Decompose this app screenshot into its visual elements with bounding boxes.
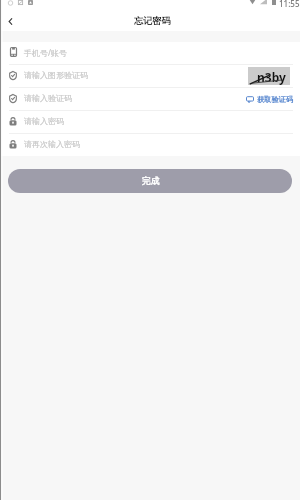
staticText: 手机号/账号 bbox=[24, 47, 289, 58]
staticText: 请输入密码 bbox=[24, 116, 289, 126]
staticText: 完成 bbox=[142, 176, 160, 187]
button[interactable]: 请输入验证码 bbox=[0, 88, 300, 110]
button[interactable]: Back bbox=[0, 11, 20, 31]
staticText: 请输入图形验证码 bbox=[24, 70, 247, 80]
button[interactable]: 手机号/账号 bbox=[0, 42, 300, 64]
staticText: n3by bbox=[257, 69, 286, 85]
staticText: 请再次输入密码 bbox=[24, 139, 289, 149]
staticText: 11:55 bbox=[279, 0, 300, 8]
button[interactable]: 请再次输入密码 bbox=[0, 134, 300, 156]
button[interactable]: 请输入图形验证码 bbox=[0, 65, 300, 87]
staticText: 请输入验证码 bbox=[24, 93, 240, 103]
staticText: 获取验证码 bbox=[257, 95, 293, 104]
button[interactable]: 获取验证码 bbox=[245, 93, 294, 106]
staticText: 忘记密码 bbox=[134, 15, 171, 27]
button[interactable]: 完成 bbox=[8, 169, 292, 193]
button[interactable]: 请输入密码 bbox=[0, 111, 300, 133]
button[interactable]: Refresh captcha bbox=[248, 67, 290, 85]
